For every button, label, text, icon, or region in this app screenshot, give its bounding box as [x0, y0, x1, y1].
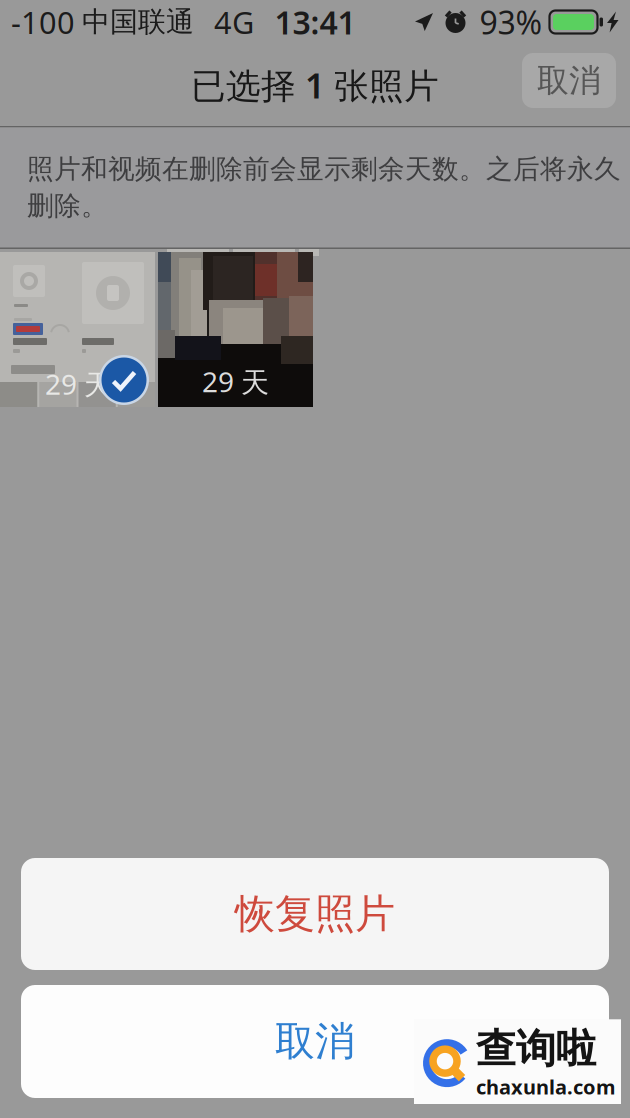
- staticText: 取消: [275, 1017, 355, 1066]
- staticText: 13:41: [274, 1, 355, 43]
- staticText: 取消: [537, 61, 601, 100]
- staticText: 93%: [479, 1, 542, 43]
- button[interactable]: 取消: [522, 53, 616, 108]
- staticText: 删除。: [27, 189, 108, 222]
- staticText: 29 天: [45, 365, 112, 403]
- staticText: 照片和视频在删除前会显示剩余天数。之后将永久: [27, 153, 621, 185]
- staticText: 查询啦: [476, 1024, 596, 1073]
- staticText: 已选择 1 张照片: [191, 62, 439, 108]
- button[interactable]: 恢复照片: [21, 858, 609, 970]
- staticText: -100: [11, 2, 75, 42]
- staticText: chaxunla.com: [476, 1073, 616, 1100]
- staticText: 恢复照片: [235, 889, 395, 938]
- staticText: 中国联通: [82, 5, 194, 39]
- button[interactable]: 取消: [21, 985, 609, 1098]
- staticText: 4G: [214, 2, 254, 42]
- staticText: 29 天: [202, 363, 269, 400]
